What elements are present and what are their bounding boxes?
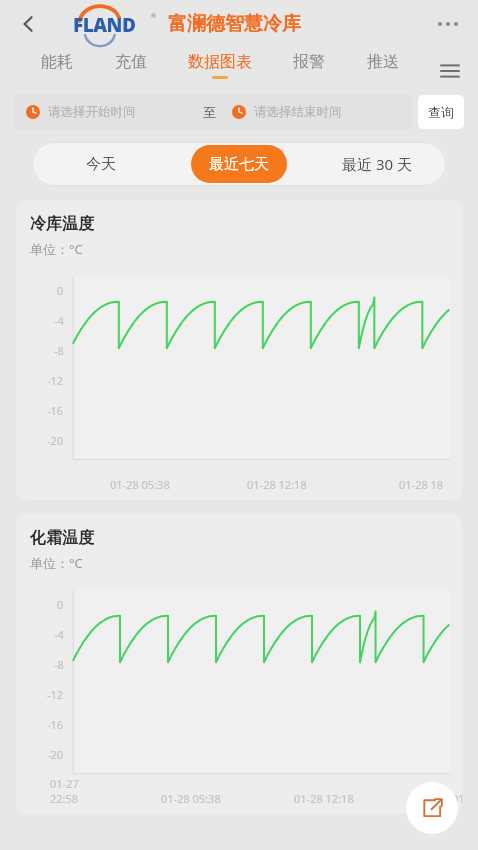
staticText: 0 — [57, 597, 64, 612]
button[interactable]: Menu — [430, 51, 470, 91]
button[interactable]: 化霜温度 — [16, 514, 462, 814]
staticText: 今天 — [86, 155, 116, 174]
staticText: 推送 — [367, 52, 399, 72]
staticText: -20 — [47, 433, 64, 448]
staticText: 请选择结束时间 — [254, 104, 342, 120]
staticText: -8 — [54, 657, 64, 672]
staticText: -4 — [54, 627, 64, 642]
staticText: 0 — [57, 283, 64, 298]
staticText: -16 — [47, 717, 64, 732]
button[interactable]: Export / Share — [406, 782, 458, 834]
button[interactable]: 查询 — [418, 95, 464, 129]
staticText: 01-28 12:18 — [294, 791, 354, 806]
button[interactable]: 最近 30 天 — [334, 148, 420, 180]
staticText: 请选择开始时间 — [48, 104, 136, 120]
staticText: -4 — [54, 313, 64, 328]
staticText: 报警 — [293, 52, 325, 72]
button[interactable]: More options — [426, 2, 470, 46]
staticText: 最近七天 — [209, 155, 269, 174]
staticText: 化霜温度 — [30, 528, 94, 548]
staticText: 最近 30 天 — [342, 154, 412, 174]
staticText: 至 — [203, 104, 216, 120]
button[interactable]: 请选择开始时间 — [14, 94, 201, 130]
staticText: 01-28 12:18 — [247, 477, 307, 492]
staticText: -12 — [47, 373, 64, 388]
staticText: 单位：°C — [30, 240, 83, 258]
button[interactable]: 最近七天 — [191, 145, 287, 183]
button[interactable]: 数据图表 — [182, 48, 258, 83]
staticText: 能耗 — [41, 52, 73, 72]
staticText: -20 — [47, 747, 64, 762]
staticText: 数据图表 — [188, 52, 252, 72]
staticText: -12 — [47, 687, 64, 702]
button[interactable]: 冷库温度 — [16, 200, 462, 500]
staticText: -8 — [54, 343, 64, 358]
button[interactable]: 充值 — [109, 48, 153, 83]
staticText: 查询 — [428, 104, 454, 120]
staticText: FLAND — [73, 12, 136, 38]
staticText: 充值 — [115, 52, 147, 72]
button[interactable]: Back — [8, 4, 48, 44]
button[interactable]: 请选择结束时间 — [218, 94, 406, 130]
button[interactable]: 报警 — [287, 48, 331, 83]
staticText: -16 — [47, 403, 64, 418]
button[interactable]: 今天 — [78, 149, 124, 180]
staticText: 富澜德智慧冷库 — [168, 12, 301, 36]
staticText: 01-28 05:38 — [110, 477, 170, 492]
staticText: 冷库温度 — [30, 214, 94, 234]
button[interactable]: 推送 — [361, 48, 405, 83]
button[interactable]: 能耗 — [35, 48, 79, 83]
staticText: 单位：°C — [30, 554, 83, 572]
staticText: 01- — [452, 791, 462, 806]
staticText: 01-27 22:58 — [50, 776, 89, 806]
staticText: 01-28 18 — [399, 477, 444, 492]
staticText: ® — [151, 12, 156, 20]
staticText: 01-28 05:38 — [161, 791, 221, 806]
